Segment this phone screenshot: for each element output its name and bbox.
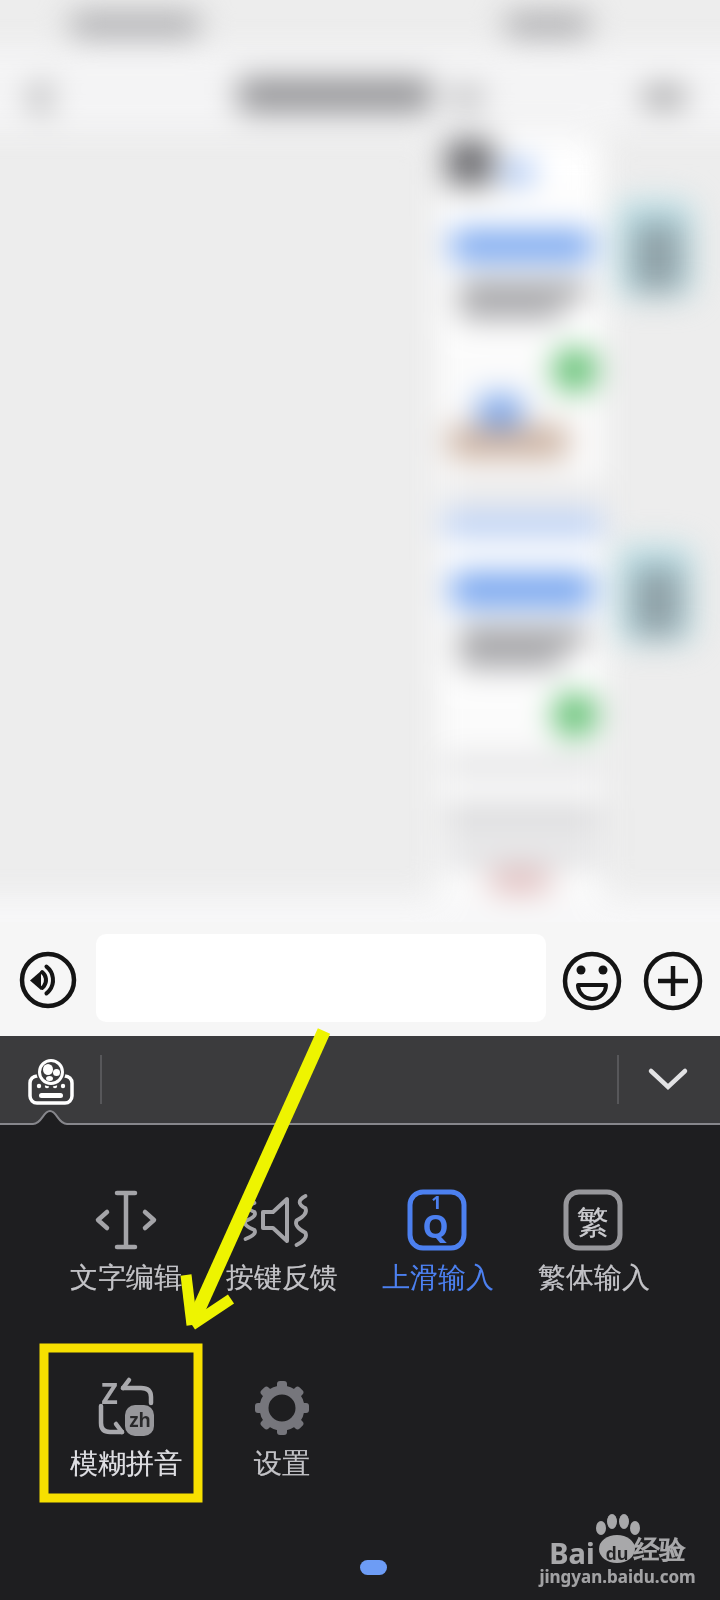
staticText: 繁	[577, 1202, 609, 1242]
staticText: Bai	[549, 1533, 595, 1572]
button[interactable]: 按键反馈	[202, 1260, 362, 1295]
button[interactable]	[565, 954, 619, 1008]
staticText: du	[605, 1541, 629, 1566]
button[interactable]	[20, 1044, 90, 1116]
button[interactable]: 上滑输入	[358, 1260, 518, 1295]
staticText: 1	[431, 1190, 442, 1215]
button[interactable]	[640, 1052, 700, 1112]
button[interactable]	[22, 954, 74, 1006]
button[interactable]: 繁体输入	[514, 1260, 674, 1295]
button[interactable]	[646, 954, 700, 1008]
staticText: 文字编辑	[70, 1260, 182, 1295]
staticText: 经验	[633, 1534, 685, 1567]
staticText: Z	[101, 1374, 118, 1412]
staticText: 设置	[254, 1446, 310, 1481]
button[interactable]: 文字编辑	[46, 1260, 206, 1295]
button[interactable]: 设置	[222, 1446, 342, 1481]
button[interactable]: 模糊拼音	[46, 1446, 206, 1481]
staticText: 繁体输入	[538, 1260, 650, 1295]
staticText: 上滑输入	[382, 1260, 494, 1295]
staticText: zh	[129, 1407, 151, 1433]
staticText: jingyan.baidu.com	[539, 1565, 696, 1588]
staticText: 按键反馈	[226, 1260, 338, 1295]
staticText: Q	[422, 1203, 449, 1248]
staticText: 模糊拼音	[70, 1446, 182, 1481]
